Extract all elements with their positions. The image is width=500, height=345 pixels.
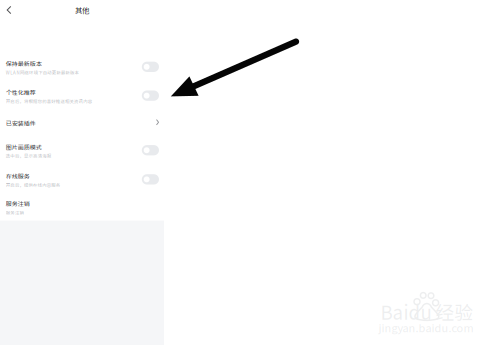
button[interactable]: 已安装插件 <box>0 110 164 136</box>
staticText: 开启后，提供在线内容服务 <box>6 182 60 188</box>
button[interactable]: 返回 <box>0 1 18 18</box>
staticText: 其他 <box>75 5 89 15</box>
button[interactable]: 保持最新版本 <box>0 53 164 82</box>
staticText: 在线服务 <box>6 172 30 180</box>
staticText: 保持最新版本 <box>6 59 42 68</box>
button[interactable]: 在线服务 <box>0 165 164 195</box>
staticText: 开启后，将根据您的喜好推送相关资讯内容 <box>6 98 92 105</box>
staticText: 服务注销 <box>6 199 30 208</box>
staticText: WLAN网络环境下自动更新最新版本 <box>6 69 79 76</box>
button[interactable]: 图片画质模式 <box>0 136 164 165</box>
staticText: 服务注销 <box>6 209 23 216</box>
staticText: 选中后，显示高清海报 <box>6 153 51 159</box>
staticText: 个性化推荐 <box>6 88 36 97</box>
staticText: 已安装插件 <box>6 119 36 128</box>
button[interactable]: 个性化推荐 <box>0 82 164 110</box>
button[interactable]: 服务注销 <box>0 195 164 221</box>
staticText: Baidu 经验 <box>380 298 473 325</box>
staticText: jingyan.baidu.com <box>378 320 473 335</box>
staticText: 图片画质模式 <box>6 143 42 151</box>
